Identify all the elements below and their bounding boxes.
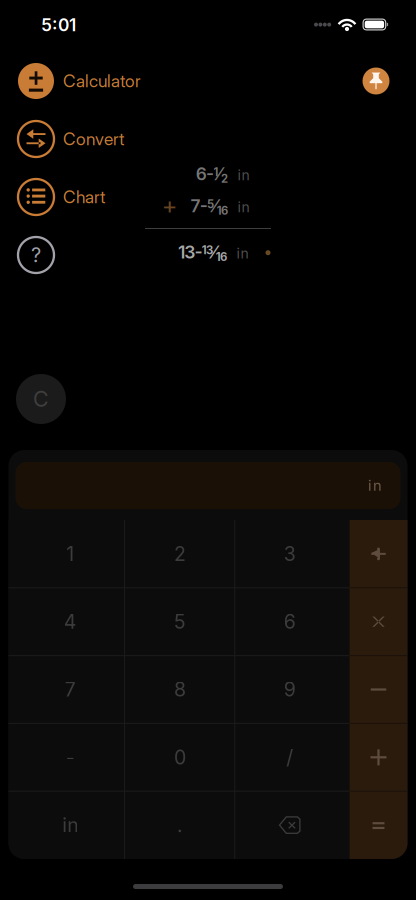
staticText: 5:01 (41, 14, 76, 35)
staticText: in (237, 199, 249, 216)
staticText: Convert (63, 128, 124, 149)
button[interactable]: Pin (356, 61, 396, 101)
staticText: + (162, 191, 178, 220)
staticText: 8 (174, 678, 186, 701)
staticText: 5 (174, 610, 186, 633)
staticText: Chart (63, 186, 105, 207)
staticText: in (368, 477, 382, 494)
button[interactable]: 2 (124, 520, 235, 588)
button[interactable]: Clear (16, 374, 66, 424)
staticText: 6 (284, 610, 296, 633)
staticText: ? (31, 243, 41, 267)
button[interactable]: Calculator (12, 57, 202, 105)
button[interactable]: Chart (12, 173, 202, 221)
staticText: 1 (66, 542, 74, 566)
staticText: in (236, 245, 248, 262)
button[interactable]: 4 (8, 588, 124, 656)
button[interactable]: Inches (8, 791, 124, 859)
button[interactable]: Equals (349, 791, 407, 859)
button[interactable]: 9 (235, 656, 349, 723)
staticText: in (237, 167, 249, 184)
staticText: 7 (65, 678, 76, 701)
staticText: 4 (64, 610, 77, 633)
staticText: 6-1⁄2 (196, 164, 228, 185)
button[interactable]: Delete (235, 791, 349, 859)
button[interactable]: 5 (124, 588, 235, 656)
button[interactable]: Slash (235, 723, 349, 791)
button[interactable]: Add (349, 723, 407, 791)
staticText: 0 (174, 745, 186, 769)
staticText: 7-5⁄16 (190, 196, 228, 217)
staticText: 3 (284, 542, 296, 566)
button[interactable]: 8 (124, 656, 235, 723)
button[interactable]: Divide (349, 520, 407, 588)
staticText: C (33, 386, 49, 412)
button[interactable]: 6 (235, 588, 349, 656)
staticText: / (286, 745, 293, 769)
staticText: 9 (284, 678, 296, 701)
staticText: - (66, 745, 75, 769)
button[interactable]: 3 (235, 520, 349, 588)
staticText: . (177, 813, 183, 837)
button[interactable]: Multiply (349, 588, 407, 656)
button[interactable]: Convert (12, 115, 202, 163)
button[interactable]: Help (14, 233, 58, 277)
staticText: in (62, 813, 78, 837)
button[interactable]: 0 (124, 723, 235, 791)
staticText: 2 (174, 542, 186, 566)
staticText: Calculator (63, 70, 141, 91)
staticText: 13-13⁄16 (178, 242, 227, 264)
button[interactable]: Subtract (349, 656, 407, 723)
